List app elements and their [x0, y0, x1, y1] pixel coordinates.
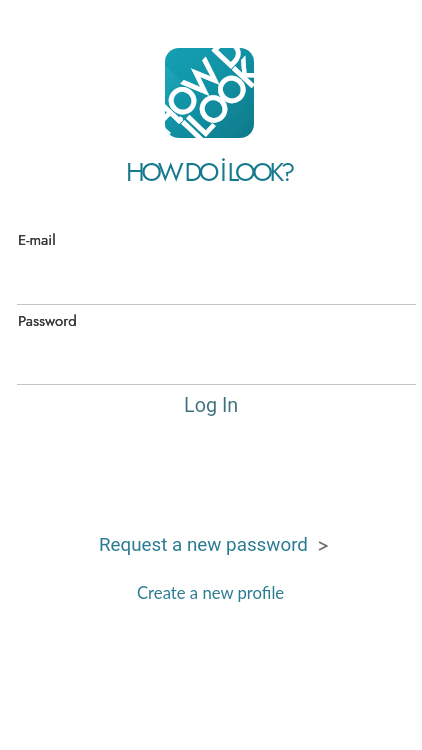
button[interactable]: Password	[18, 310, 422, 384]
other: How do I look logo	[165, 48, 254, 138]
staticText: E-mail	[18, 229, 56, 251]
staticText: Request a new password	[99, 534, 308, 556]
staticText: Log In	[184, 394, 239, 417]
button[interactable]: Log In	[0, 387, 422, 423]
button[interactable]: Create a new profile	[0, 581, 422, 605]
staticText: HOW DO İ LOOK?	[126, 153, 292, 191]
staticText: E-mail	[18, 229, 56, 251]
staticText: E-mail	[18, 229, 56, 251]
staticText: Password	[18, 310, 77, 332]
staticText: Create a new profile	[137, 583, 285, 603]
staticText: Password	[18, 310, 77, 332]
button[interactable]: Request a new password	[99, 532, 328, 558]
staticText: Password	[18, 310, 77, 332]
button[interactable]: E-mail	[18, 229, 422, 304]
